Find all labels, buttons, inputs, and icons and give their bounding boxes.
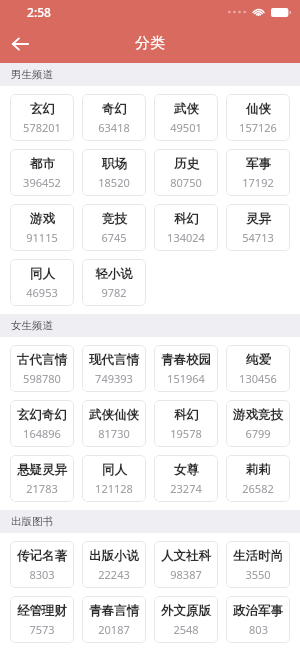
button[interactable]: 武侠 bbox=[154, 94, 218, 141]
button[interactable]: 奇幻 bbox=[82, 94, 146, 141]
staticText: 分类 bbox=[135, 34, 165, 53]
staticText: 134024 bbox=[167, 230, 205, 245]
button[interactable]: 青春校园 bbox=[154, 345, 218, 392]
staticText: 396452 bbox=[23, 175, 61, 190]
staticText: 91115 bbox=[26, 230, 58, 245]
button[interactable]: 科幻 bbox=[154, 400, 218, 447]
staticText: 出版图书 bbox=[11, 515, 53, 528]
button[interactable]: 历史 bbox=[154, 149, 218, 196]
staticText: 26582 bbox=[242, 481, 274, 496]
staticText: 18520 bbox=[98, 175, 130, 190]
staticText: 20187 bbox=[98, 622, 130, 637]
staticText: 8303 bbox=[29, 567, 55, 582]
button[interactable]: 古代言情 bbox=[10, 345, 74, 392]
button[interactable]: 经管理财 bbox=[10, 596, 74, 643]
staticText: 游戏竞技 bbox=[233, 407, 283, 423]
staticText: 121128 bbox=[95, 481, 133, 496]
staticText: 2:58 bbox=[27, 4, 51, 20]
staticText: 同人 bbox=[30, 266, 55, 282]
staticText: 经管理财 bbox=[17, 603, 67, 619]
button[interactable]: 人文社科 bbox=[154, 541, 218, 588]
button[interactable]: 外文原版 bbox=[154, 596, 218, 643]
staticText: 玄幻 bbox=[30, 101, 55, 117]
staticText: 轻小说 bbox=[95, 266, 133, 282]
staticText: 游戏 bbox=[30, 211, 55, 227]
button[interactable]: 武侠仙侠 bbox=[82, 400, 146, 447]
staticText: 武侠 bbox=[174, 101, 199, 117]
staticText: 灵异 bbox=[246, 211, 271, 227]
staticText: 2548 bbox=[173, 622, 199, 637]
staticText: 莉莉 bbox=[246, 462, 271, 478]
staticText: 青春校园 bbox=[161, 352, 211, 368]
staticText: 古代言情 bbox=[17, 352, 67, 368]
staticText: 竞技 bbox=[102, 211, 127, 227]
staticText: 749393 bbox=[95, 371, 133, 386]
staticText: 157126 bbox=[239, 120, 277, 135]
button[interactable]: 仙侠 bbox=[226, 94, 290, 141]
staticText: 7573 bbox=[29, 622, 55, 637]
staticText: 578201 bbox=[23, 120, 61, 135]
staticText: 81730 bbox=[98, 426, 130, 441]
button[interactable]: 同人 bbox=[82, 455, 146, 502]
button[interactable]: 玄幻 bbox=[10, 94, 74, 141]
button[interactable]: 玄幻奇幻 bbox=[10, 400, 74, 447]
button[interactable]: 军事 bbox=[226, 149, 290, 196]
button[interactable]: Back bbox=[0, 24, 40, 63]
staticText: 63418 bbox=[98, 120, 130, 135]
staticText: 23274 bbox=[170, 481, 202, 496]
staticText: 现代言情 bbox=[89, 352, 139, 368]
staticText: 151964 bbox=[167, 371, 205, 386]
staticText: 17192 bbox=[242, 175, 274, 190]
button[interactable]: 莉莉 bbox=[226, 455, 290, 502]
button[interactable]: 游戏 bbox=[10, 204, 74, 251]
button[interactable]: 都市 bbox=[10, 149, 74, 196]
staticText: 598780 bbox=[23, 371, 61, 386]
button[interactable]: 职场 bbox=[82, 149, 146, 196]
button[interactable]: 游戏竞技 bbox=[226, 400, 290, 447]
staticText: 历史 bbox=[174, 156, 199, 172]
staticText: 22243 bbox=[98, 567, 130, 582]
staticText: 玄幻奇幻 bbox=[17, 407, 67, 423]
staticText: 9782 bbox=[101, 285, 127, 300]
button[interactable]: 政治军事 bbox=[226, 596, 290, 643]
staticText: 人文社科 bbox=[161, 548, 211, 564]
staticText: 49501 bbox=[170, 120, 202, 135]
button[interactable]: 悬疑灵异 bbox=[10, 455, 74, 502]
staticText: 164896 bbox=[23, 426, 61, 441]
staticText: 生活时尚 bbox=[233, 548, 283, 564]
staticText: 军事 bbox=[246, 156, 271, 172]
staticText: 青春言情 bbox=[89, 603, 139, 619]
staticText: 传记名著 bbox=[17, 548, 67, 564]
button[interactable]: 出版小说 bbox=[82, 541, 146, 588]
staticText: 19578 bbox=[170, 426, 202, 441]
staticText: 3550 bbox=[245, 567, 271, 582]
staticText: 悬疑灵异 bbox=[17, 462, 67, 478]
staticText: 6745 bbox=[101, 230, 127, 245]
button[interactable]: 竞技 bbox=[82, 204, 146, 251]
button[interactable]: 灵异 bbox=[226, 204, 290, 251]
staticText: 仙侠 bbox=[246, 101, 271, 117]
button[interactable]: 科幻 bbox=[154, 204, 218, 251]
staticText: 6799 bbox=[245, 426, 271, 441]
staticText: 同人 bbox=[102, 462, 127, 478]
staticText: 98387 bbox=[170, 567, 202, 582]
button[interactable]: 生活时尚 bbox=[226, 541, 290, 588]
staticText: 职场 bbox=[102, 156, 127, 172]
button[interactable]: 纯爱 bbox=[226, 345, 290, 392]
button[interactable]: 女尊 bbox=[154, 455, 218, 502]
button[interactable]: 传记名著 bbox=[10, 541, 74, 588]
staticText: 女生频道 bbox=[11, 319, 53, 332]
staticText: 54713 bbox=[242, 230, 274, 245]
staticText: 都市 bbox=[30, 156, 55, 172]
staticText: 21783 bbox=[26, 481, 58, 496]
button[interactable]: 现代言情 bbox=[82, 345, 146, 392]
staticText: 80750 bbox=[170, 175, 202, 190]
staticText: 男生频道 bbox=[11, 68, 53, 81]
staticText: 803 bbox=[249, 622, 268, 637]
button[interactable]: 同人 bbox=[10, 259, 74, 306]
staticText: 46953 bbox=[26, 285, 58, 300]
staticText: 外文原版 bbox=[161, 603, 211, 619]
staticText: 政治军事 bbox=[233, 603, 283, 619]
button[interactable]: 轻小说 bbox=[82, 259, 146, 306]
button[interactable]: 青春言情 bbox=[82, 596, 146, 643]
